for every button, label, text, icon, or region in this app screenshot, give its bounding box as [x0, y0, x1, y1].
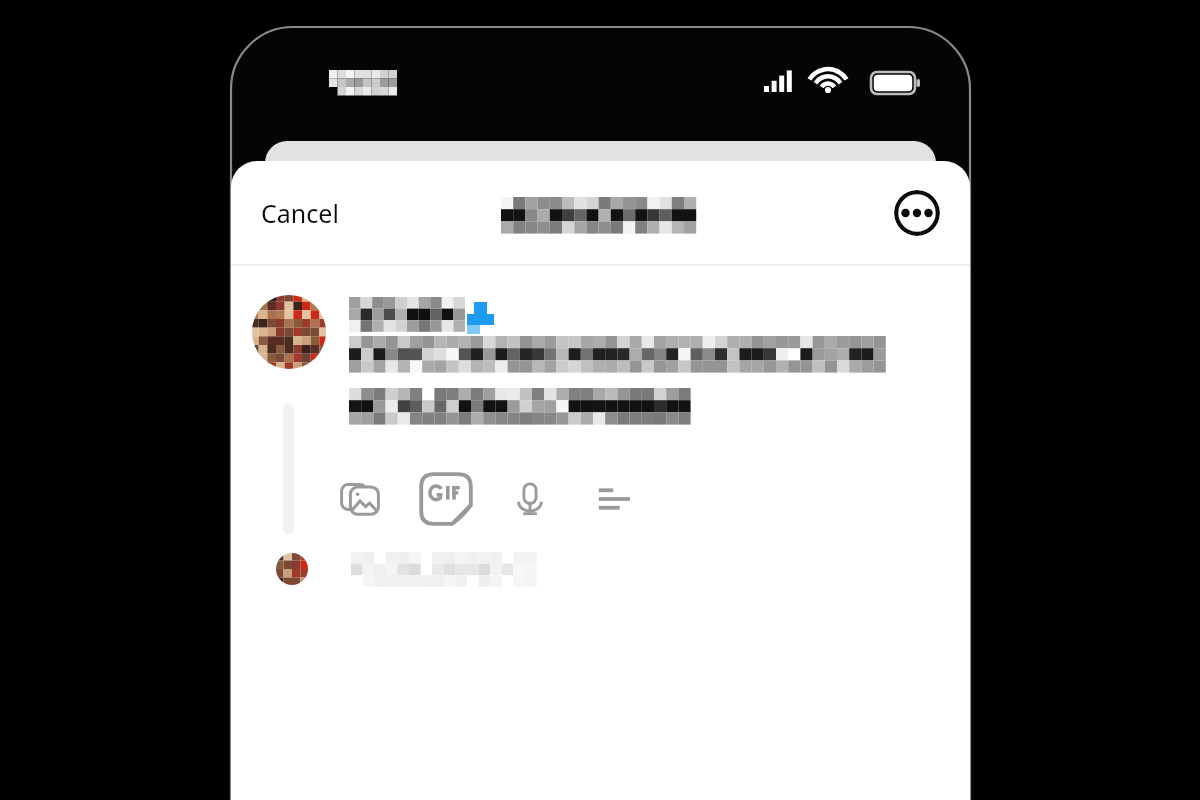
- button[interactable]: Add poll: [583, 468, 645, 530]
- button[interactable]: Voice recording: [499, 468, 561, 530]
- button[interactable]: Cancel: [245, 186, 355, 240]
- button[interactable]: Add photo: [329, 468, 391, 530]
- button[interactable]: More options: [894, 190, 940, 236]
- button[interactable]: Add GIF: [401, 454, 491, 544]
- staticText: Cancel: [261, 196, 339, 230]
- button[interactable]: [231, 538, 970, 608]
